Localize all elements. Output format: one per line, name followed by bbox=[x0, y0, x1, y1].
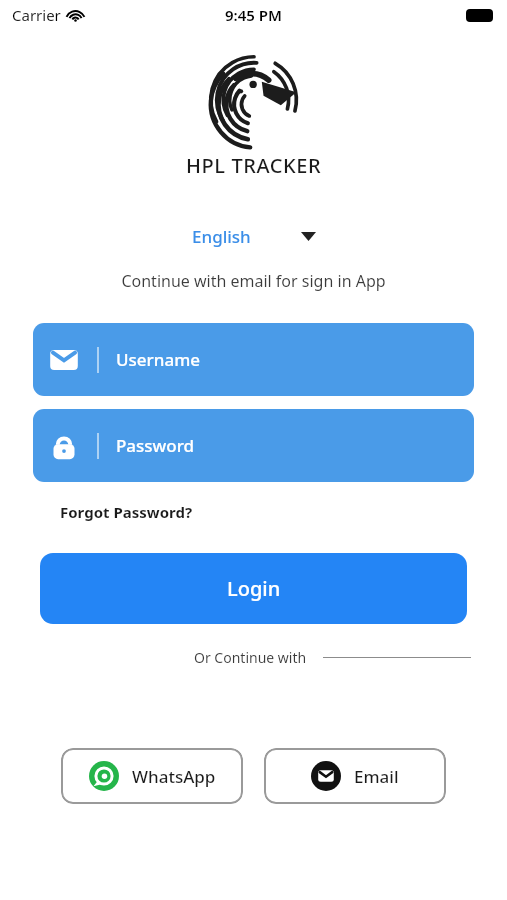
button[interactable]: Login bbox=[40, 553, 467, 624]
staticText: HPL TRACKER bbox=[186, 152, 322, 179]
staticText: Forgot Password? bbox=[60, 502, 193, 522]
button[interactable]: Email bbox=[264, 748, 446, 804]
staticText: Or Continue with bbox=[194, 648, 307, 667]
staticText: Password bbox=[116, 434, 195, 457]
button[interactable]: Password bbox=[33, 409, 474, 482]
button[interactable]: WhatsApp bbox=[61, 748, 243, 804]
button[interactable]: Forgot Password? bbox=[60, 499, 193, 525]
staticText: WhatsApp bbox=[132, 765, 216, 788]
staticText: Continue with email for sign in App bbox=[0, 270, 507, 292]
staticText: Username bbox=[116, 348, 200, 371]
staticText: 9:45 PM bbox=[225, 5, 282, 25]
staticText: Carrier bbox=[12, 5, 61, 25]
staticText: English bbox=[192, 225, 251, 248]
staticText: Email bbox=[354, 765, 399, 788]
button[interactable]: English bbox=[186, 221, 322, 252]
button[interactable]: Username bbox=[33, 323, 474, 396]
staticText: Login bbox=[227, 575, 281, 602]
